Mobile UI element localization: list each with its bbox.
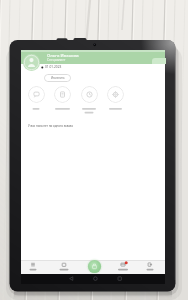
staticText: Изменить — [51, 76, 65, 80]
button[interactable] — [107, 86, 124, 103]
button[interactable] — [54, 261, 74, 274]
button[interactable] — [113, 261, 133, 274]
staticText: Специалист — [47, 58, 66, 62]
staticText: 01.01.2023 — [45, 65, 62, 69]
staticText: Ольга Иванова — [47, 53, 79, 59]
staticText: У вас пока нет ни одного заказа — [28, 124, 73, 128]
button[interactable]: Изменить — [44, 74, 71, 82]
button[interactable] — [140, 261, 160, 274]
button[interactable] — [23, 54, 40, 71]
button[interactable] — [54, 86, 71, 103]
button[interactable] — [81, 86, 98, 103]
button[interactable] — [86, 258, 103, 275]
button[interactable] — [28, 86, 45, 103]
button[interactable] — [23, 261, 43, 274]
